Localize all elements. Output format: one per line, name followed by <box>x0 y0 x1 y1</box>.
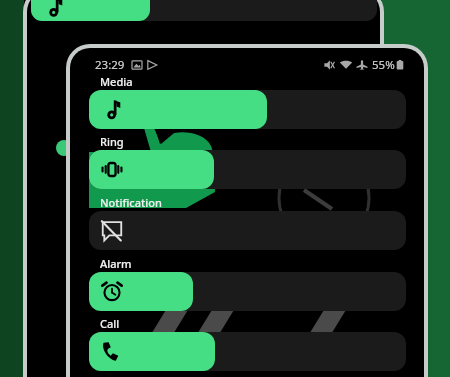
button[interactable] <box>0 0 450 377</box>
